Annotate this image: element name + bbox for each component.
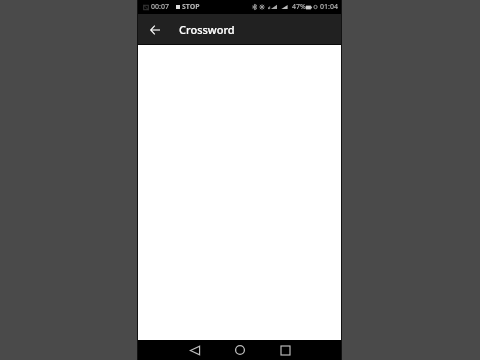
staticText: STOP — [182, 2, 200, 12]
staticText: 01:04 — [320, 2, 338, 12]
staticText: 00:07 — [151, 2, 169, 12]
button[interactable]: Back — [185, 340, 205, 360]
staticText: 47% — [292, 2, 306, 12]
button[interactable]: Recent apps — [275, 340, 295, 360]
staticText: Crossword — [179, 22, 235, 37]
button[interactable]: Navigate up — [143, 18, 167, 42]
button[interactable]: Home — [230, 340, 250, 360]
